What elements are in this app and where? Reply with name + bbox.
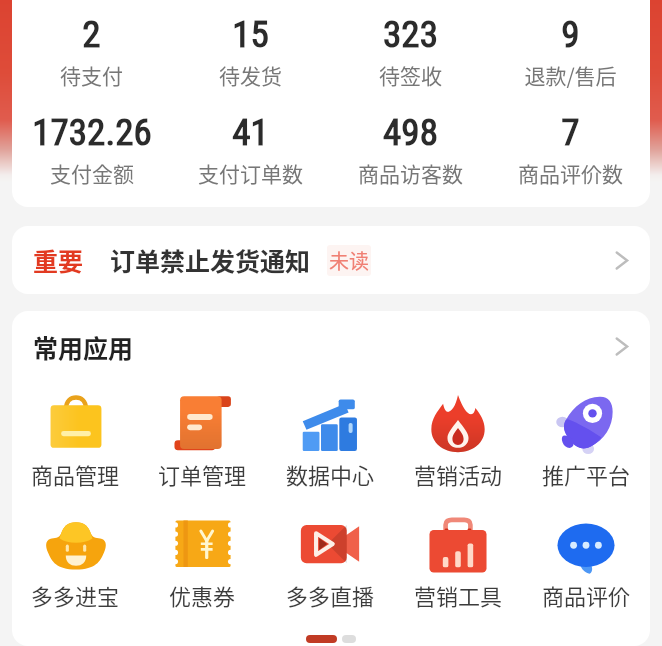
button[interactable]: 9 — [490, 0, 650, 98]
button[interactable]: 商品评价 — [522, 503, 650, 624]
button[interactable]: 1732.26 — [12, 98, 171, 195]
button[interactable]: 498 — [330, 98, 490, 195]
staticText: 商品评价数 — [518, 158, 623, 188]
button[interactable]: 营销活动 — [394, 382, 522, 503]
button[interactable]: 数据中心 — [266, 382, 394, 503]
staticText: 商品管理 — [31, 458, 120, 490]
button[interactable]: 多多进宝 — [12, 503, 139, 624]
staticText: 323 — [383, 13, 438, 56]
staticText: 1732.26 — [32, 111, 152, 154]
staticText: 15 — [232, 13, 269, 56]
button[interactable]: 商品管理 — [12, 382, 139, 503]
staticText: 支付金额 — [50, 158, 134, 188]
staticText: 498 — [383, 111, 438, 154]
staticText: 退款/售后 — [524, 60, 617, 90]
button[interactable]: 营销工具 — [394, 503, 522, 624]
button[interactable]: 323 — [330, 0, 490, 98]
staticText: 多多进宝 — [31, 579, 120, 611]
staticText: 重要 — [33, 242, 84, 278]
button[interactable]: 优惠券 — [139, 503, 266, 624]
button[interactable]: 15 — [171, 0, 330, 98]
staticText: 优惠券 — [169, 579, 236, 611]
staticText: 待发货 — [219, 60, 282, 90]
staticText: 41 — [232, 111, 269, 154]
staticText: 未读 — [329, 246, 369, 275]
button[interactable]: 2 — [12, 0, 171, 98]
button[interactable]: 7 — [490, 98, 650, 195]
other: View all apps — [611, 337, 630, 356]
staticText: 订单禁止发货通知 — [110, 242, 311, 278]
staticText: 商品评价 — [542, 579, 631, 611]
staticText: 待签收 — [379, 60, 442, 90]
staticText: 推广平台 — [542, 458, 631, 490]
button[interactable]: 重要 — [12, 226, 650, 294]
staticText: 营销工具 — [414, 579, 503, 611]
button[interactable]: 多多直播 — [266, 503, 394, 624]
button[interactable]: 41 — [171, 98, 330, 195]
button[interactable]: 订单管理 — [139, 382, 266, 503]
staticText: 9 — [561, 13, 580, 56]
staticText: 待支付 — [60, 60, 123, 90]
staticText: 商品访客数 — [358, 158, 463, 188]
staticText: 2 — [82, 13, 101, 56]
staticText: 7 — [561, 111, 580, 154]
staticText: 支付订单数 — [198, 158, 303, 188]
staticText: 订单管理 — [158, 458, 247, 490]
staticText: 常用应用 — [33, 329, 134, 365]
other: Open notice — [611, 251, 630, 270]
staticText: 数据中心 — [286, 458, 375, 490]
button[interactable]: 常用应用 — [12, 311, 650, 382]
staticText: 营销活动 — [414, 458, 503, 490]
staticText: 多多直播 — [286, 579, 375, 611]
button[interactable]: 推广平台 — [522, 382, 650, 503]
